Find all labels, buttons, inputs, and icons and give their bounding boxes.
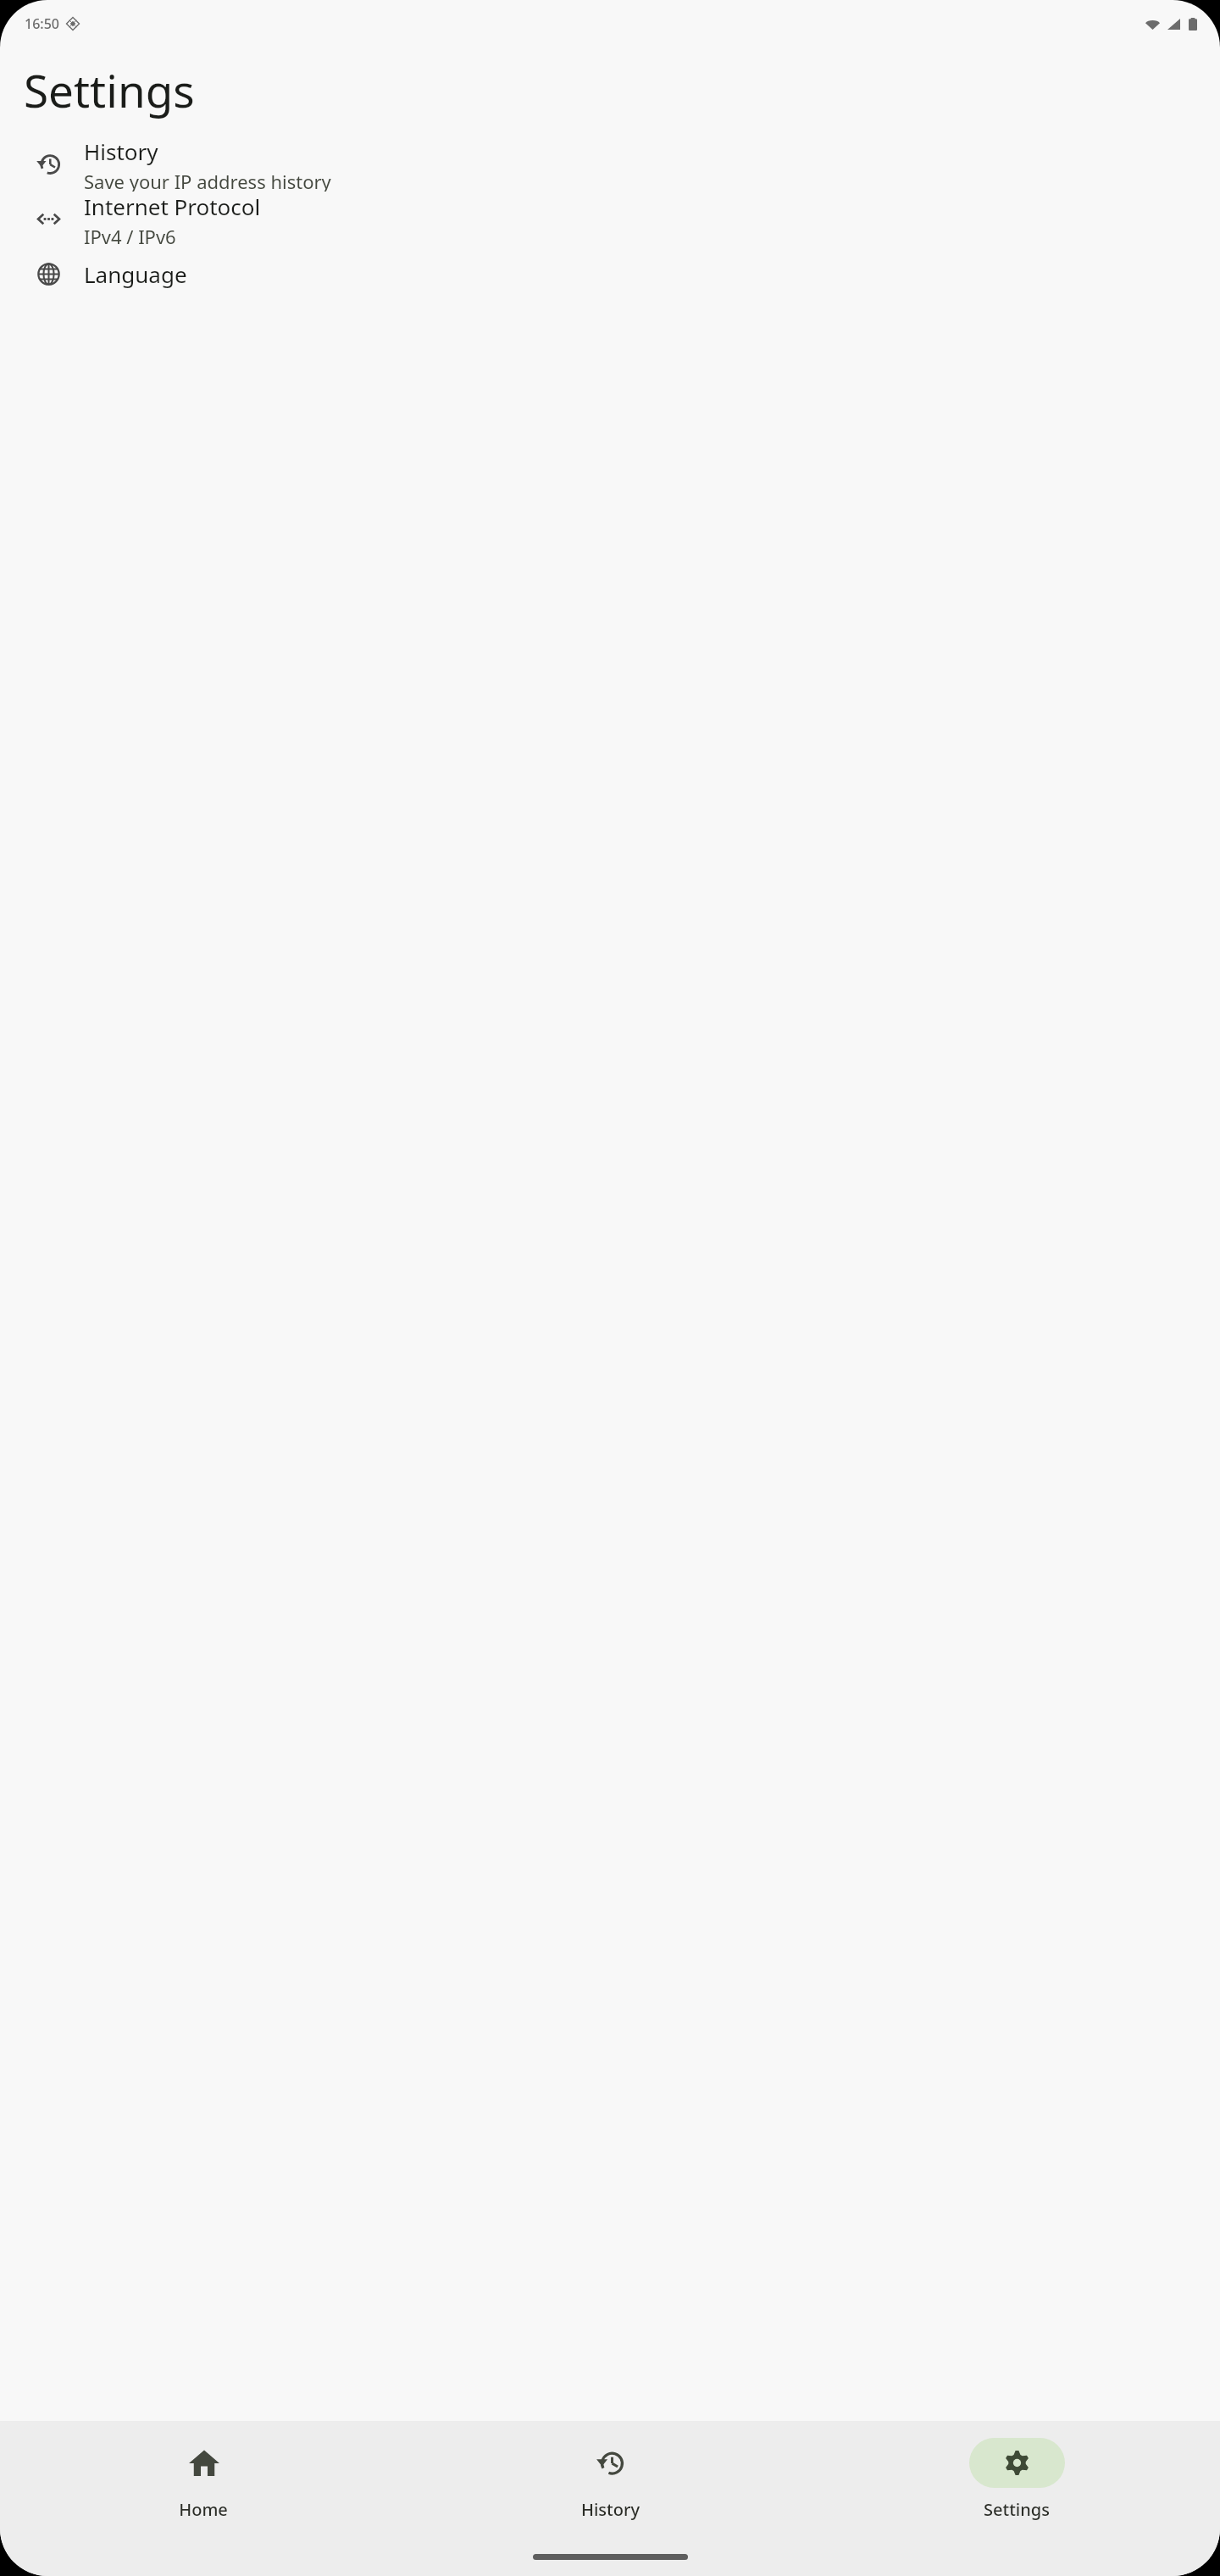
staticText: IPv4 / IPv6 bbox=[84, 224, 176, 247]
button[interactable]: Language bbox=[0, 247, 1220, 302]
staticText: History bbox=[581, 2498, 640, 2521]
button[interactable]: Internet Protocol bbox=[0, 192, 1220, 247]
staticText: Home bbox=[179, 2498, 228, 2521]
staticText: Language bbox=[84, 259, 187, 289]
staticText: Settings bbox=[984, 2498, 1050, 2521]
button[interactable]: Settings bbox=[813, 2421, 1220, 2521]
button[interactable]: History bbox=[0, 136, 1220, 192]
staticText: Internet Protocol bbox=[84, 192, 261, 221]
staticText: Settings bbox=[24, 59, 195, 120]
staticText: 16:50 bbox=[25, 14, 59, 33]
staticText: History bbox=[84, 136, 158, 166]
button[interactable]: History bbox=[407, 2421, 813, 2521]
button[interactable]: Home bbox=[0, 2421, 407, 2521]
staticText: Save your IP address history bbox=[84, 169, 331, 192]
